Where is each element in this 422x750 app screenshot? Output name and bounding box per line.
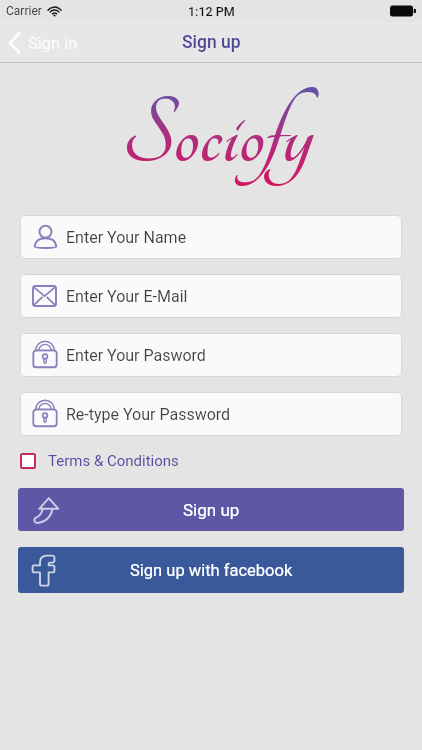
staticText: Carrier [6,4,42,18]
button[interactable]: Sign in [8,32,78,54]
button[interactable]: Re-type Your Password [20,392,402,436]
staticText: Sign in [28,34,78,53]
staticText: Sign up with facebook [130,561,293,580]
staticText: Sign up [182,32,241,53]
button[interactable]: Sign up [18,488,404,531]
button[interactable]: Enter Your E-Mail [20,274,402,318]
staticText: Sociofy [122,86,313,186]
button[interactable]: Enter Your Pasword [20,333,402,377]
button[interactable]: Terms & Conditions [20,452,179,470]
staticText: Terms & Conditions [48,452,179,470]
staticText: Sign up [183,500,240,520]
button[interactable]: Sign up with facebook [18,547,404,593]
staticText: Enter Your Pasword [66,346,206,365]
staticText: 1:12 PM [188,4,235,19]
button[interactable]: Enter Your Name [20,215,402,259]
staticText: Enter Your Name [66,228,187,247]
staticText: Enter Your E-Mail [66,287,188,306]
staticText: Re-type Your Password [66,405,231,424]
